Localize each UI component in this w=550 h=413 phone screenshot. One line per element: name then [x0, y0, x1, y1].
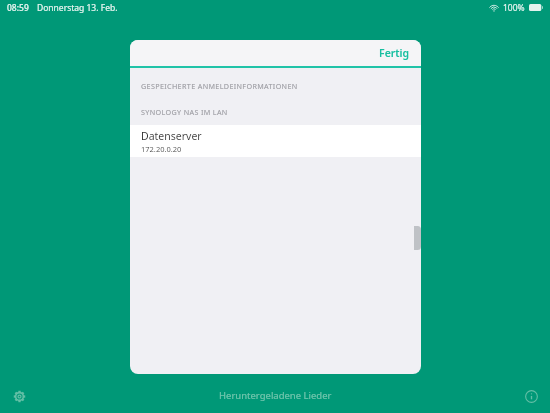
staticText: 08:59	[7, 2, 29, 14]
staticText: SYNOLOGY NAS IM LAN	[141, 107, 228, 117]
staticText: 172.20.0.20	[141, 144, 182, 154]
button[interactable]: Datenserver	[130, 125, 421, 157]
staticText: GESPEICHERTE ANMELDEINFORMATIONEN	[141, 81, 298, 91]
staticText: 100%	[503, 2, 525, 14]
staticText: Datenserver	[141, 129, 202, 143]
button[interactable]: Settings	[6, 383, 32, 409]
staticText: Heruntergeladene Lieder	[219, 389, 332, 402]
staticText: Donnerstag 13. Feb.	[37, 2, 118, 14]
button[interactable]: Info	[518, 383, 544, 409]
button[interactable]: Fertig	[368, 42, 421, 64]
button[interactable]: Heruntergeladene Lieder	[211, 385, 340, 406]
staticText: Fertig	[379, 46, 410, 60]
